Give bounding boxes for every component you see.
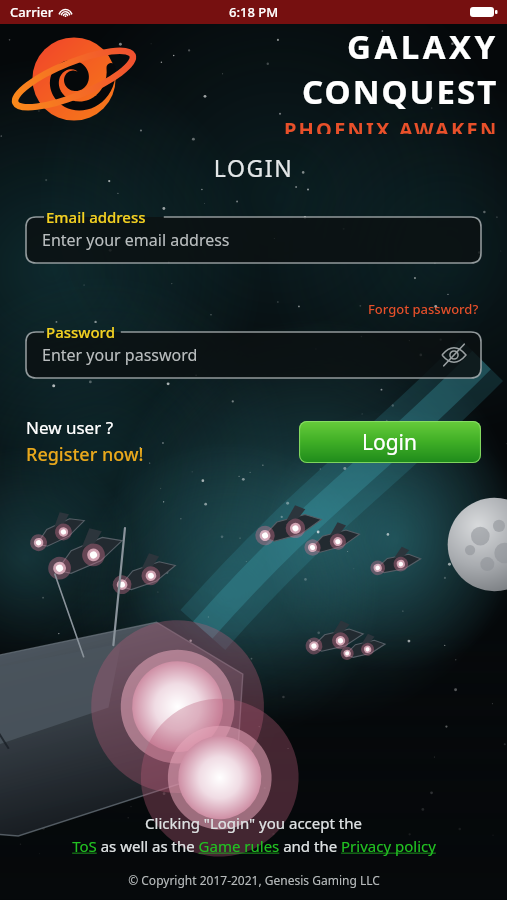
button[interactable]: Password xyxy=(26,322,481,378)
button[interactable]: Login xyxy=(299,421,481,463)
staticText: Password xyxy=(46,322,115,342)
button[interactable]: Forgot password? xyxy=(366,299,481,319)
staticText: Login xyxy=(362,428,418,457)
staticText: Enter your password xyxy=(42,344,198,366)
staticText: CONQUEST xyxy=(302,69,499,114)
button[interactable]: New user ? xyxy=(26,416,144,467)
button[interactable]: Email address xyxy=(26,207,481,263)
staticText: Forgot password? xyxy=(368,300,479,318)
staticText: Register now! xyxy=(26,442,144,467)
staticText: Clicking "Login" you accept the xyxy=(145,813,362,833)
staticText: Carrier xyxy=(10,3,54,21)
staticText: LOGIN xyxy=(0,152,507,183)
staticText: 6:18 PM xyxy=(229,3,279,21)
staticText: New user ? xyxy=(26,416,114,439)
staticText: GALAXY xyxy=(347,24,499,69)
staticText: © Copyright 2017-2021, Genesis Gaming LL… xyxy=(128,872,380,888)
staticText: Email address xyxy=(46,207,146,227)
staticText: ToS as well as the Game rules and the Pr… xyxy=(72,836,436,856)
staticText: Enter your email address xyxy=(42,229,230,251)
button[interactable]: ToS as well as the Game rules and the Pr… xyxy=(72,836,436,856)
staticText: PHOENIX AWAKEN xyxy=(284,116,499,134)
button[interactable]: Show password xyxy=(439,340,469,370)
